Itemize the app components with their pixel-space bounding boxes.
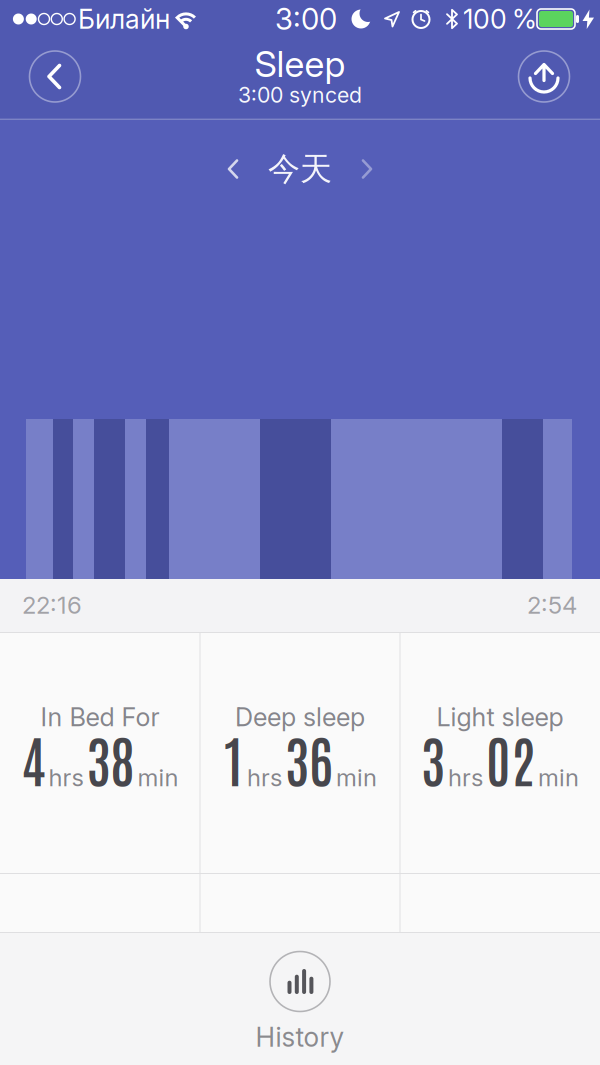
staticText: Sleep <box>254 42 345 86</box>
staticText: Deep sleep <box>235 702 365 732</box>
staticText: History <box>255 1021 344 1053</box>
staticText: min <box>336 763 377 792</box>
staticText: 100 % <box>463 3 537 35</box>
staticText: 22:16 <box>22 590 82 619</box>
button[interactable]: Share <box>518 51 569 102</box>
staticText: min <box>137 763 178 792</box>
staticText: In Bed For <box>40 702 159 732</box>
button[interactable]: Next day <box>359 158 374 179</box>
staticText: 2:54 <box>527 590 577 619</box>
staticText: 4 <box>21 723 45 794</box>
staticText: 02 <box>486 723 535 794</box>
button[interactable]: Previous day <box>225 158 240 179</box>
staticText: 3:00 synced <box>238 82 362 108</box>
staticText: hrs <box>448 763 483 792</box>
staticText: hrs <box>247 763 282 792</box>
button[interactable]: History <box>0 933 600 1065</box>
staticText: 36 <box>285 723 333 794</box>
staticText: 今天 <box>268 149 332 189</box>
staticText: hrs <box>48 763 83 792</box>
staticText: 1 <box>223 723 244 794</box>
staticText: 3:00 <box>275 1 337 37</box>
staticText: 38 <box>86 723 134 794</box>
staticText: Билайн <box>78 3 170 35</box>
staticText: Light sleep <box>436 702 563 732</box>
staticText: min <box>538 763 579 792</box>
staticText: 3 <box>421 723 445 794</box>
button[interactable]: Back <box>29 51 80 102</box>
